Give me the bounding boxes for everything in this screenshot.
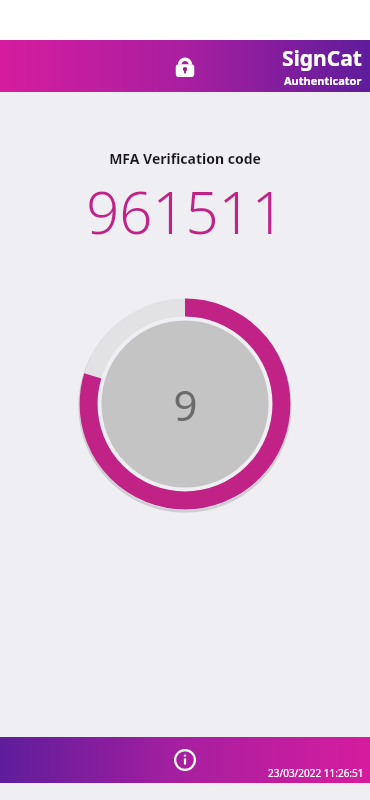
button[interactable]: Info <box>165 740 205 780</box>
staticText: 961511 <box>86 172 285 251</box>
staticText: 9 <box>173 376 198 433</box>
button[interactable]: SignCat <box>282 44 362 88</box>
staticText: 23/03/2022 11:26:51 <box>268 766 364 780</box>
staticText: SignCat <box>282 44 362 73</box>
staticText: Authenticator <box>284 73 362 88</box>
button[interactable]: Secure <box>163 44 207 88</box>
staticText: MFA Verification code <box>109 149 261 168</box>
button[interactable]: Code expires in 9 seconds <box>77 296 293 512</box>
